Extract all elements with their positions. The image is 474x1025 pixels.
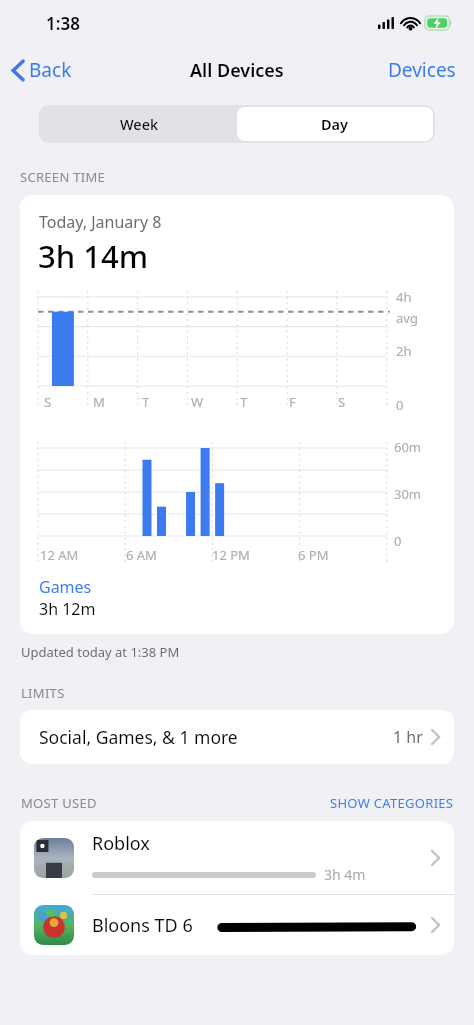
- staticText: Bloons TD 6: [92, 913, 193, 938]
- staticText: W: [191, 393, 204, 411]
- staticText: S: [338, 393, 346, 411]
- staticText: 3h 4m: [324, 865, 366, 884]
- staticText: 12 PM: [212, 546, 250, 564]
- staticText: 0: [396, 396, 404, 412]
- button[interactable]: Devices: [370, 51, 474, 89]
- staticText: Today, January 8: [39, 211, 162, 233]
- button[interactable]: Week: [41, 107, 237, 141]
- staticText: SCREEN TIME: [20, 168, 106, 186]
- staticText: 1 hr: [393, 726, 423, 748]
- staticText: 2h: [396, 342, 412, 360]
- button[interactable]: Social, Games, & 1 more: [20, 710, 454, 764]
- staticText: 3h 12m: [39, 598, 96, 620]
- staticText: 3h 14m: [38, 235, 149, 277]
- staticText: Updated today at 1:38 PM: [21, 643, 180, 661]
- staticText: T: [240, 393, 248, 411]
- staticText: Social, Games, & 1 more: [39, 725, 393, 749]
- button[interactable]: Back: [0, 51, 82, 89]
- staticText: All Devices: [190, 58, 284, 83]
- staticText: Roblox: [92, 831, 150, 856]
- staticText: T: [142, 393, 150, 411]
- staticText: avg: [396, 309, 418, 327]
- staticText: LIMITS: [21, 684, 65, 702]
- staticText: 60m: [394, 438, 422, 456]
- staticText: 4h: [396, 288, 412, 306]
- button[interactable]: Day: [237, 107, 433, 141]
- staticText: 6 AM: [126, 546, 157, 564]
- staticText: F: [289, 393, 296, 411]
- staticText: S: [44, 393, 52, 411]
- staticText: 6 PM: [298, 546, 329, 564]
- staticText: 12 AM: [40, 546, 79, 564]
- staticText: Back: [29, 57, 72, 83]
- staticText: Week: [120, 114, 159, 134]
- staticText: 0: [394, 532, 402, 550]
- staticText: M: [93, 393, 105, 411]
- staticText: Day: [321, 114, 349, 134]
- staticText: 30m: [394, 485, 422, 503]
- button[interactable]: SHOW CATEGORIES: [330, 794, 454, 812]
- button[interactable]: Games: [39, 576, 92, 598]
- staticText: 1:38: [46, 12, 80, 35]
- staticText: MOST USED: [21, 794, 330, 812]
- button[interactable]: Roblox: [20, 821, 454, 894]
- button[interactable]: Bloons TD 6: [20, 895, 454, 955]
